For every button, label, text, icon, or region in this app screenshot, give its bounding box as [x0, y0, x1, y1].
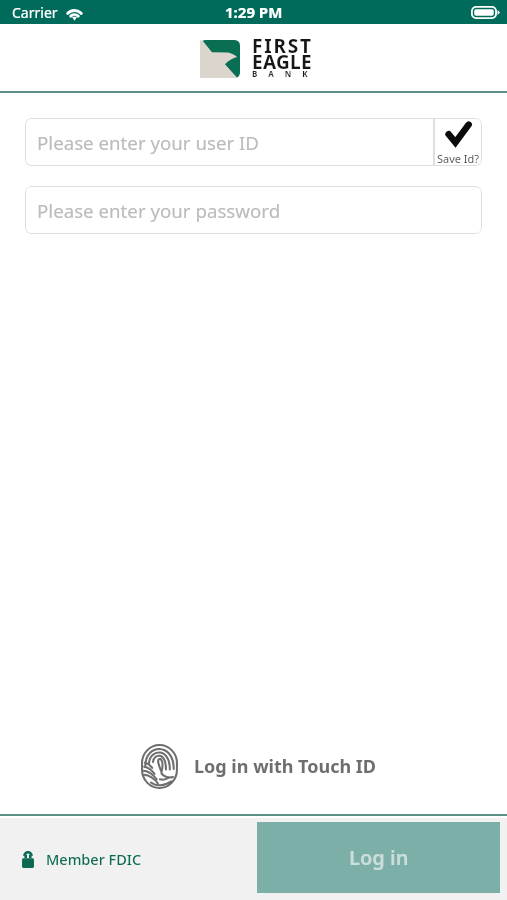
button[interactable]: Log in — [257, 822, 500, 893]
staticText: Carrier — [12, 3, 58, 22]
staticText: Log in with Touch ID — [194, 754, 377, 779]
button[interactable]: Please enter your user ID — [25, 118, 434, 166]
button[interactable]: Save Id? — [434, 118, 482, 166]
staticText: 1:29 PM — [225, 2, 283, 22]
staticText: EAGLE — [252, 49, 312, 75]
other: Wi-Fi — [64, 5, 85, 20]
staticText: FIRST — [252, 33, 313, 59]
staticText: Please enter your password — [37, 198, 281, 223]
staticText: BANK — [252, 68, 319, 79]
button[interactable]: Log in with Touch ID — [5, 737, 507, 795]
button[interactable]: Member FDIC — [22, 849, 142, 869]
button[interactable]: Please enter your password — [25, 186, 482, 234]
staticText: Save Id? — [437, 151, 480, 166]
staticText: Please enter your user ID — [37, 130, 260, 155]
other: Battery full — [471, 6, 500, 19]
staticText: Member FDIC — [46, 849, 142, 869]
staticText: Log in — [349, 844, 409, 871]
